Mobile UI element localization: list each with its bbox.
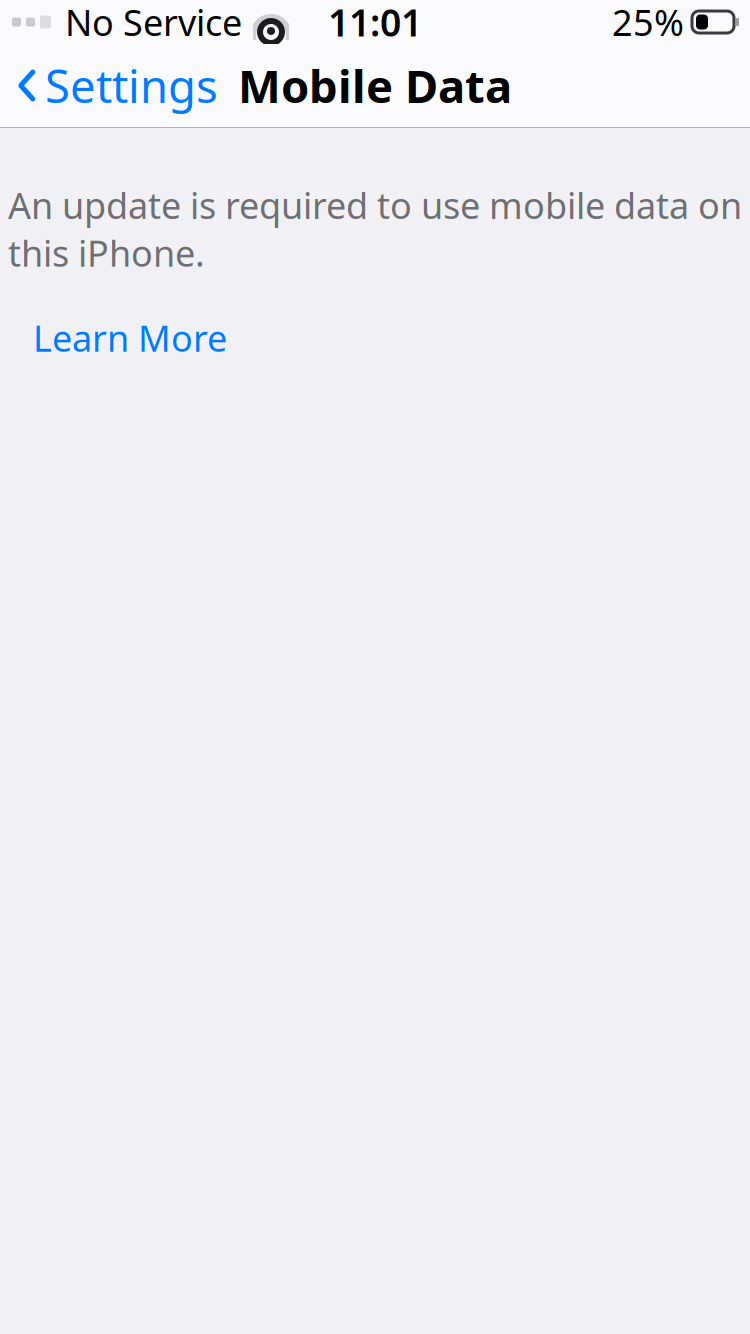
- staticText: 25%: [612, 0, 684, 46]
- button[interactable]: Settings: [0, 45, 218, 126]
- staticText: Learn More: [33, 314, 227, 362]
- button[interactable]: Learn More: [31, 308, 229, 368]
- staticText: An update is required to use mobile data…: [8, 181, 742, 277]
- staticText: 11:01: [328, 0, 422, 47]
- staticText: Settings: [45, 55, 218, 116]
- staticText: No Service: [65, 0, 242, 46]
- staticText: Mobile Data: [238, 55, 512, 116]
